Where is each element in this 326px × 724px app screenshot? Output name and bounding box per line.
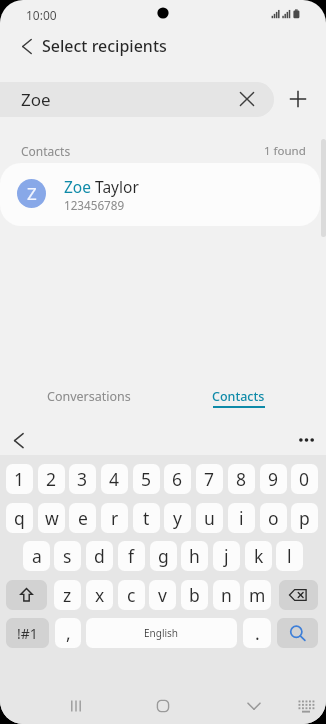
staticText: f xyxy=(128,544,135,568)
staticText: Select recipients xyxy=(42,35,167,57)
button[interactable]: d xyxy=(86,541,113,571)
button[interactable] xyxy=(0,82,274,117)
button[interactable]: m xyxy=(244,580,271,610)
button[interactable]: 0 xyxy=(291,464,318,494)
staticText: x xyxy=(95,583,105,607)
staticText: 5 xyxy=(141,467,152,491)
button[interactable] xyxy=(0,163,320,226)
staticText: a xyxy=(32,544,42,568)
staticText: k xyxy=(254,544,264,568)
button[interactable]: Add recipient xyxy=(286,87,310,111)
staticText: 3 xyxy=(77,467,88,491)
staticText: h xyxy=(189,544,200,568)
staticText: i xyxy=(239,506,244,530)
staticText: 1 xyxy=(14,467,25,491)
staticText: w xyxy=(45,506,59,530)
button[interactable]: 2 xyxy=(38,464,65,494)
staticText: 4 xyxy=(109,467,120,491)
staticText: e xyxy=(78,506,88,530)
button[interactable]: h xyxy=(181,541,208,571)
button[interactable]: x xyxy=(86,580,113,610)
button[interactable]: g xyxy=(150,541,177,571)
button[interactable]: . xyxy=(243,618,271,648)
button[interactable]: Collapse keyboard xyxy=(5,427,33,455)
button[interactable]: !#1 xyxy=(6,618,49,648)
staticText: 6 xyxy=(172,467,183,491)
button[interactable]: Search xyxy=(277,618,318,648)
staticText: p xyxy=(299,506,310,530)
button[interactable]: o xyxy=(260,503,287,533)
staticText: 123456789 xyxy=(64,197,125,213)
button[interactable]: 8 xyxy=(228,464,255,494)
button[interactable]: u xyxy=(196,503,223,533)
button[interactable]: k xyxy=(245,541,272,571)
button[interactable]: q xyxy=(6,503,33,533)
staticText: d xyxy=(94,544,105,568)
staticText: g xyxy=(158,544,169,568)
staticText: n xyxy=(221,583,232,607)
staticText: Taylor xyxy=(91,176,139,197)
staticText: b xyxy=(189,583,200,607)
button[interactable]: i xyxy=(228,503,255,533)
button[interactable]: Keyboard xyxy=(290,690,322,722)
button[interactable]: Recents xyxy=(60,690,92,722)
staticText: r xyxy=(111,506,119,530)
button[interactable]: , xyxy=(55,618,81,648)
button[interactable]: 9 xyxy=(260,464,287,494)
button[interactable]: f xyxy=(118,541,145,571)
button[interactable]: v xyxy=(149,580,176,610)
button[interactable]: Conversations xyxy=(20,384,158,410)
button[interactable]: Hide keyboard xyxy=(238,690,270,722)
staticText: z xyxy=(63,583,72,607)
button[interactable]: l xyxy=(276,541,303,571)
staticText: c xyxy=(127,583,136,607)
button[interactable]: j xyxy=(213,541,240,571)
staticText: l xyxy=(287,544,292,568)
button[interactable]: 6 xyxy=(164,464,191,494)
button[interactable]: 4 xyxy=(101,464,128,494)
staticText: 0 xyxy=(299,467,310,491)
button[interactable]: n xyxy=(213,580,240,610)
staticText: Zoe xyxy=(64,176,91,197)
button[interactable]: Shift xyxy=(6,580,47,610)
button[interactable]: Home xyxy=(147,690,179,722)
button[interactable]: 7 xyxy=(196,464,223,494)
button[interactable]: 3 xyxy=(69,464,96,494)
button[interactable]: t xyxy=(133,503,160,533)
button[interactable]: 1 xyxy=(6,464,33,494)
staticText: m xyxy=(249,583,266,607)
staticText: o xyxy=(268,506,279,530)
button[interactable]: a xyxy=(23,541,50,571)
staticText: !#1 xyxy=(17,624,38,643)
staticText: u xyxy=(204,506,215,530)
staticText: q xyxy=(14,506,25,530)
staticText: y xyxy=(173,506,182,530)
button[interactable]: w xyxy=(38,503,65,533)
button[interactable]: c xyxy=(118,580,145,610)
button[interactable]: r xyxy=(101,503,128,533)
button[interactable]: More options xyxy=(294,427,320,453)
staticText: j xyxy=(224,544,229,568)
button[interactable]: p xyxy=(291,503,318,533)
button[interactable]: Clear search xyxy=(235,87,259,111)
button[interactable]: b xyxy=(181,580,208,610)
staticText: 2 xyxy=(46,467,57,491)
button[interactable]: 5 xyxy=(133,464,160,494)
button[interactable]: Back xyxy=(7,33,37,63)
staticText: English xyxy=(144,626,179,640)
button[interactable]: Contacts xyxy=(175,384,302,410)
staticText: 10:00 xyxy=(26,7,57,23)
staticText: 7 xyxy=(204,467,215,491)
button[interactable]: Backspace xyxy=(279,580,318,610)
staticText: s xyxy=(63,544,72,568)
staticText: Z xyxy=(27,182,37,205)
button[interactable]: y xyxy=(164,503,191,533)
button[interactable]: English xyxy=(86,618,237,648)
staticText: Zoe xyxy=(21,88,51,111)
staticText: Conversations xyxy=(47,388,131,405)
button[interactable]: s xyxy=(54,541,81,571)
staticText: , xyxy=(66,621,71,645)
staticText: . xyxy=(255,621,260,645)
button[interactable]: e xyxy=(69,503,96,533)
button[interactable]: z xyxy=(54,580,81,610)
